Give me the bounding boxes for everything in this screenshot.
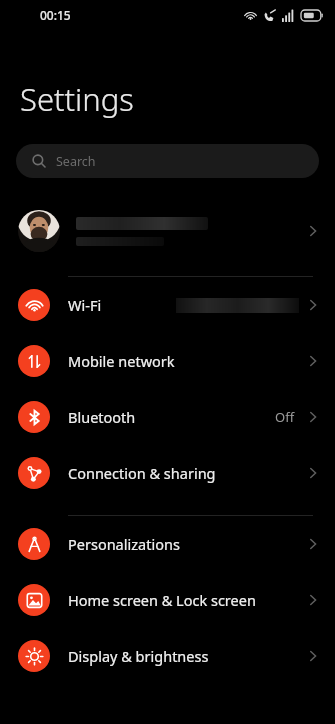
button[interactable]: Personalizations xyxy=(0,516,335,572)
button[interactable]: Mobile network xyxy=(0,333,335,389)
staticText: Mobile network xyxy=(68,351,175,371)
staticText: Off xyxy=(275,408,295,426)
button[interactable]: Display & brightness xyxy=(0,628,335,684)
staticText: Home screen & Lock screen xyxy=(68,590,256,610)
button[interactable]: Home screen & Lock screen xyxy=(0,572,335,628)
staticText: Bluetooth xyxy=(68,407,136,427)
staticText: Search xyxy=(56,153,96,170)
staticText: Connection & sharing xyxy=(68,463,216,483)
staticText: Wi-Fi xyxy=(68,295,102,315)
button[interactable]: Search xyxy=(16,144,319,178)
staticText: Personalizations xyxy=(68,534,180,554)
button[interactable]: Bluetooth xyxy=(0,389,335,445)
button[interactable]: Connection & sharing xyxy=(0,445,335,501)
staticText: Settings xyxy=(20,78,134,120)
staticText: Display & brightness xyxy=(68,646,209,666)
button[interactable] xyxy=(0,200,335,262)
button[interactable]: Wi-Fi xyxy=(0,277,335,333)
staticText: 00:15 xyxy=(40,7,71,23)
